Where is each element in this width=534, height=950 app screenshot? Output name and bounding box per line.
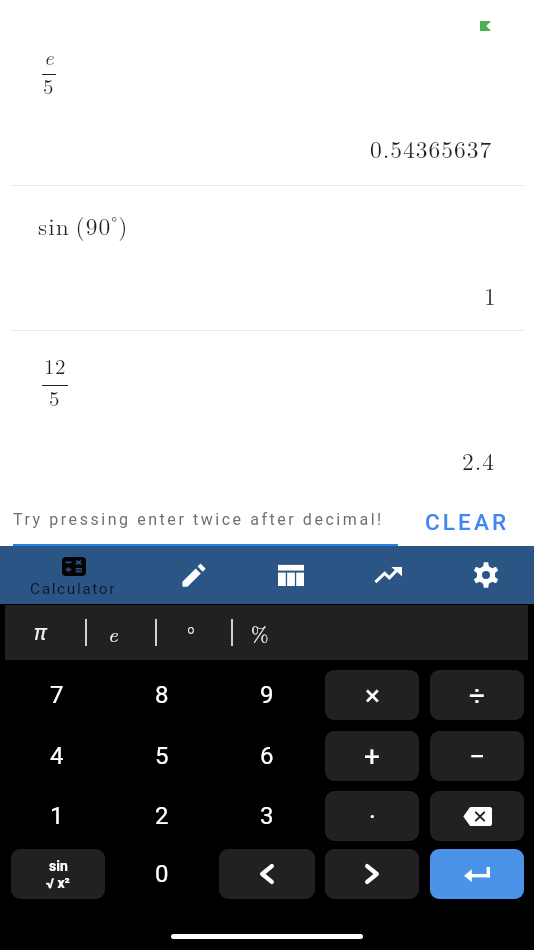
staticText: √ x² [46,875,70,891]
button[interactable]: 0 [110,849,214,899]
button[interactable]: Settings [452,546,520,604]
staticText: π [34,618,48,647]
staticText: 0.54365637 [370,132,493,165]
staticText: e [44,41,55,71]
staticText: 0 [155,860,169,888]
button[interactable]: Graph [354,546,422,604]
staticText: 5 [43,70,55,100]
button[interactable]: 6 [215,731,319,781]
button[interactable]: Table [257,546,325,604]
staticText: − [469,740,486,773]
button[interactable]: Move left [219,849,315,899]
staticText: sin [49,858,68,874]
staticText: 4 [50,742,64,770]
button[interactable]: Calculator [20,546,127,604]
button[interactable]: 3 [215,791,319,841]
button[interactable]: 1 [5,791,109,841]
staticText: 1 [50,802,64,830]
button[interactable]: CLEAR [398,497,534,546]
button[interactable]: ÷ [430,670,524,720]
button[interactable]: + [325,731,419,781]
staticText: 1 [484,279,497,312]
button[interactable]: − [430,731,524,781]
button[interactable]: ° [165,605,217,660]
button[interactable]: 4 [5,731,109,781]
button[interactable]: Edit [159,546,227,604]
button[interactable]: Backspace [430,791,524,841]
staticText: 9 [260,681,274,709]
button[interactable]: × [325,670,419,720]
button[interactable]: sin [11,849,105,899]
staticText: 5 [49,382,61,412]
staticText: Try pressing enter twice after decimal! [13,510,384,529]
button[interactable]: 5 [110,731,214,781]
staticText: ÷ [469,679,485,712]
staticText: + [364,740,380,773]
staticText: CLEAR [425,509,510,535]
staticText: ° [187,618,196,648]
button[interactable]: Move right [325,849,419,899]
staticText: 2.4 [462,444,496,477]
staticText: % [251,618,270,648]
button[interactable]: e [87,605,139,660]
button[interactable]: . [325,791,419,841]
staticText: e [108,618,119,648]
button[interactable]: 7 [5,670,109,720]
staticText: 12 [44,350,67,380]
staticText: Calculator [30,580,117,598]
button[interactable]: 8 [110,670,214,720]
staticText: × [365,679,380,712]
staticText: 6 [260,742,274,770]
staticText: 3 [260,802,274,830]
staticText: 5 [155,742,169,770]
button[interactable]: π [15,605,67,660]
staticText: sin (90°) [38,209,129,242]
button[interactable]: % [234,605,286,660]
staticText: 7 [50,681,64,709]
staticText: . [369,794,376,824]
staticText: 2 [155,802,169,830]
button[interactable]: 9 [215,670,319,720]
button[interactable]: 2 [110,791,214,841]
button[interactable]: Enter [430,849,524,899]
staticText: 8 [155,681,169,709]
